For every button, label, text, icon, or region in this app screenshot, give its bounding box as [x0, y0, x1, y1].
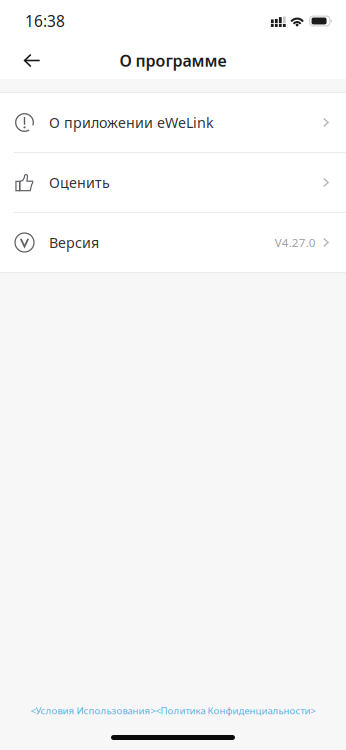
- staticText: <Условия Использования>: [30, 704, 155, 717]
- button[interactable]: <Условия Использования>: [30, 704, 155, 717]
- staticText: <Политика Конфиденциальности>: [155, 704, 315, 717]
- staticText: О программе: [119, 50, 226, 71]
- button[interactable]: <Политика Конфиденциальности>: [155, 704, 315, 717]
- staticText: 16:38: [25, 10, 65, 32]
- staticText: Оценить: [49, 173, 110, 192]
- button[interactable]: Оценить: [0, 153, 346, 212]
- staticText: Версия: [49, 233, 99, 252]
- button[interactable]: Версия: [0, 213, 346, 272]
- staticText: V4.27.0: [275, 235, 316, 250]
- button[interactable]: О приложении eWeLink: [0, 93, 346, 152]
- button[interactable]: Back: [10, 39, 54, 81]
- staticText: О приложении eWeLink: [49, 113, 214, 132]
